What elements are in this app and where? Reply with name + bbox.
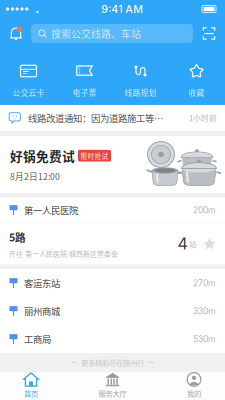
staticText: 丽州商城	[24, 304, 60, 318]
staticText: 开往	[9, 249, 23, 258]
staticText: 线路规划	[124, 87, 156, 98]
staticText: 公交云卡	[12, 87, 44, 98]
button[interactable]: 好锅免费试	[0, 136, 225, 193]
button[interactable]: 扫一扫	[193, 26, 225, 40]
staticText: 客运东站	[24, 276, 60, 290]
button[interactable]: 客运东站	[0, 269, 225, 297]
staticText: 530m	[193, 334, 216, 344]
button[interactable]: 工商局	[0, 325, 225, 353]
button[interactable]: 丽州商城	[0, 297, 225, 325]
button[interactable]: 线路规划	[112, 65, 168, 98]
staticText: 5路	[9, 229, 26, 244]
staticText: 服务大厅	[98, 388, 126, 398]
button[interactable]: 线路改道通知：因为道路施工等原因...	[0, 105, 225, 131]
staticText: 首页	[24, 388, 38, 398]
staticText: 第一人民医院	[24, 203, 78, 217]
staticText: 330m	[193, 306, 216, 316]
button[interactable]: 电子票	[56, 65, 112, 98]
button[interactable]: 收藏	[168, 65, 224, 98]
staticText: 好锅免费试	[10, 147, 75, 165]
staticText: 270m	[193, 278, 216, 288]
staticText: 更多精彩尽在随州行	[81, 357, 144, 368]
staticText: 电子票	[72, 87, 96, 98]
staticText: 4	[177, 234, 187, 253]
button[interactable]: 服务大厅	[84, 372, 140, 399]
button[interactable]: 通知	[0, 26, 31, 40]
staticText: 8月2日12:00	[10, 170, 60, 182]
button[interactable]: 第一人民医院	[0, 197, 225, 222]
staticText: 限时抢试	[80, 151, 108, 161]
staticText: 第一人民医院-城西新区管委会	[25, 248, 118, 258]
staticText: 200m	[193, 205, 216, 215]
staticText: 收藏	[188, 87, 204, 98]
staticText: 9:41 AM	[101, 2, 143, 15]
staticText: 工商局	[24, 332, 51, 346]
button[interactable]: 首页	[3, 372, 59, 399]
staticText: 搜索公交线路、车站	[51, 26, 141, 41]
staticText: 线路改道通知：因为道路施工等原因...	[28, 111, 169, 125]
button[interactable]: 我的	[166, 372, 222, 399]
button[interactable]: 公交云卡	[0, 65, 56, 98]
button[interactable]: 搜索公交线路、车站	[31, 24, 193, 43]
button[interactable]: 5路	[0, 223, 225, 264]
staticText: 我的	[187, 388, 201, 398]
staticText: 站	[189, 238, 196, 249]
staticText: 1小时前	[189, 112, 217, 124]
